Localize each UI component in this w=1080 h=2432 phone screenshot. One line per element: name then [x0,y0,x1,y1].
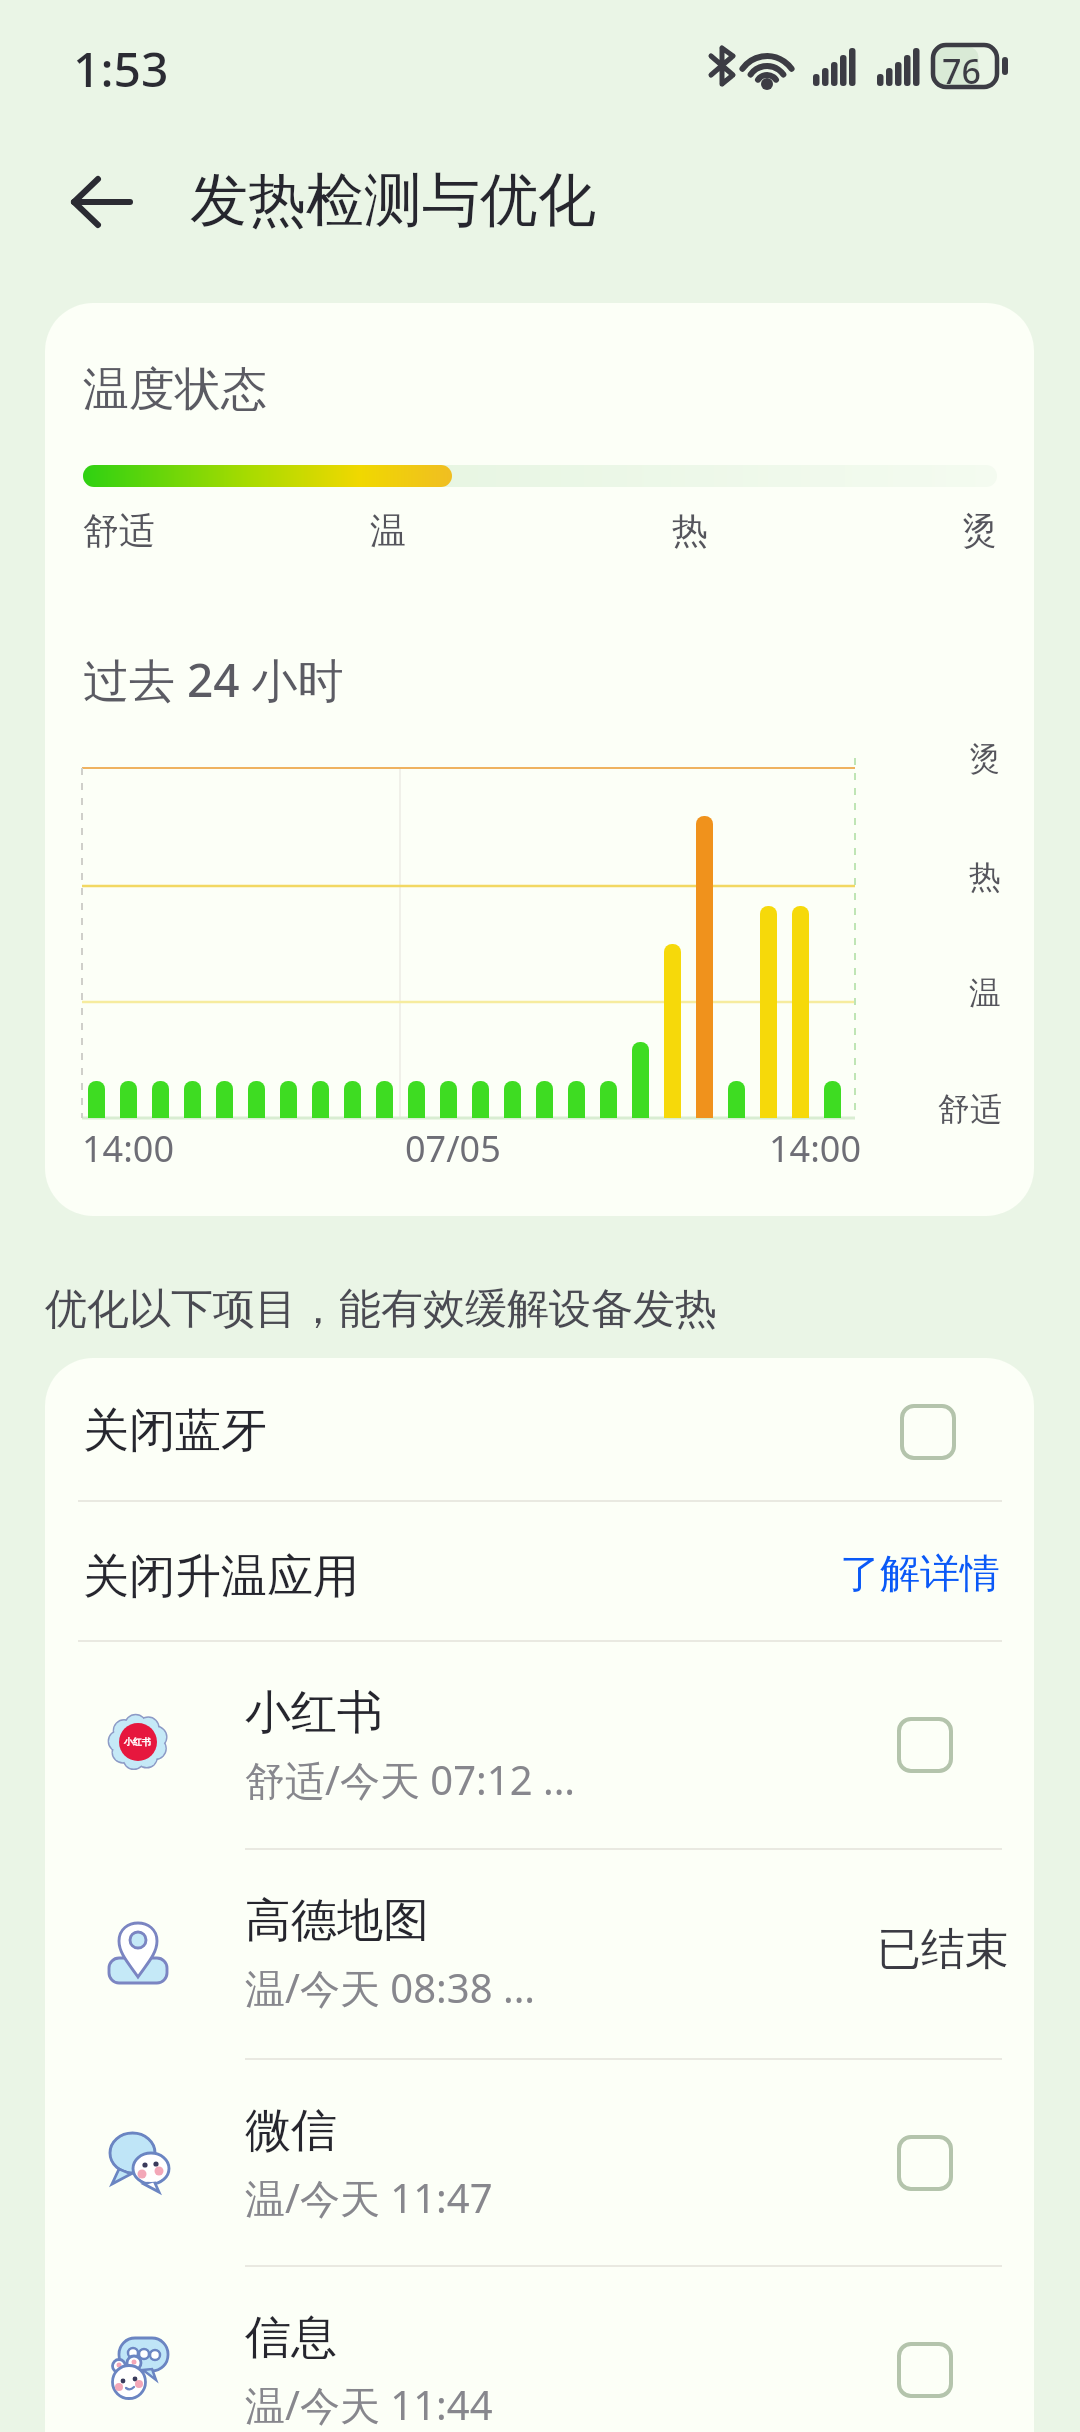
staticText: 热 [672,508,708,553]
staticText: 07/05 [405,1124,501,1173]
staticText: 关闭升温应用 [83,1548,359,1606]
staticText: 舒适/今天 07:12 ... [245,1752,576,1807]
staticText: 76 [942,48,981,94]
staticText: 温/今天 11:44 [245,2377,493,2432]
staticText: 已结束 [877,1922,1009,1977]
staticText: 14:00 [769,1124,862,1173]
button[interactable] [897,1717,953,1773]
staticText: 温 [969,973,1001,1013]
staticText: 小红书 [245,1684,383,1742]
staticText: 舒适 [83,508,155,553]
button[interactable] [60,160,144,244]
button[interactable]: 关闭蓝牙 [45,1358,1034,1500]
button[interactable]: 微信 [45,2060,1034,2266]
button[interactable]: 信息 [45,2267,1034,2432]
staticText: 热 [969,857,1001,897]
staticText: 温/今天 11:47 [245,2170,493,2225]
button[interactable]: 关闭升温应用 [45,1502,1034,1640]
button[interactable]: 了解详情 [840,1548,1000,1598]
staticText: 发热检测与优化 [190,164,596,237]
button[interactable]: 高德地图 [45,1850,1034,2056]
staticText: 温度状态 [83,361,267,419]
staticText: 高德地图 [245,1892,429,1950]
staticText: 小红书 [124,1736,151,1747]
staticText: 优化以下项目，能有效缓解设备发热 [45,1283,717,1336]
staticText: 微信 [245,2102,337,2160]
staticText: 过去 24 小时 [83,648,344,711]
staticText: 烫 [969,739,1001,779]
button[interactable] [897,2342,953,2398]
staticText: 关闭蓝牙 [83,1402,267,1460]
staticText: 了解详情 [840,1548,1000,1598]
staticText: 温 [370,508,406,553]
staticText: 舒适 [938,1089,1002,1129]
button[interactable]: 小红书 [45,1642,1034,1848]
staticText: 1:53 [73,36,169,101]
staticText: 温/今天 08:38 ... [245,1960,536,2015]
button[interactable] [897,2135,953,2191]
staticText: 烫 [962,508,998,553]
staticText: 信息 [245,2309,337,2367]
button[interactable] [900,1404,956,1460]
staticText: 14:00 [82,1124,175,1173]
